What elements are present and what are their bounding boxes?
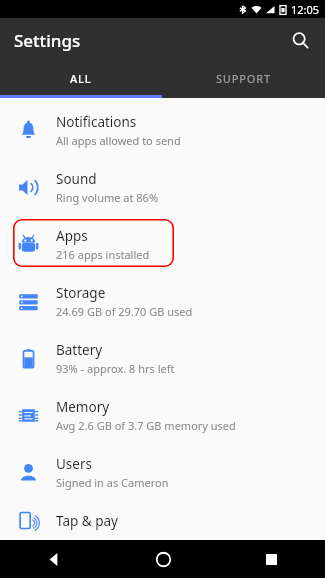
staticText: Signed in as Cameron <box>56 475 169 490</box>
button[interactable]: Recent apps <box>217 540 325 578</box>
button[interactable]: Memory <box>0 387 325 444</box>
staticText: Avg 2.6 GB of 3.7 GB memory used <box>56 418 236 433</box>
button[interactable]: Battery <box>0 330 325 387</box>
staticText: ALL <box>70 71 92 86</box>
button[interactable]: Storage <box>0 273 325 330</box>
staticText: Ring volume at 86% <box>56 190 159 205</box>
button[interactable]: Sound <box>0 159 325 216</box>
button[interactable]: Back <box>0 540 109 578</box>
staticText: Memory <box>56 398 110 416</box>
staticText: SUPPORT <box>216 71 271 86</box>
button[interactable]: Apps <box>0 216 325 273</box>
button[interactable]: Search <box>283 23 317 57</box>
staticText: Settings <box>14 29 81 52</box>
staticText: All apps allowed to send <box>56 133 181 148</box>
staticText: Sound <box>56 170 97 188</box>
staticText: 216 apps installed <box>56 247 150 262</box>
button[interactable]: ALL <box>0 62 162 95</box>
button[interactable]: Notifications <box>0 102 325 159</box>
staticText: Notifications <box>56 113 137 131</box>
button[interactable]: Home <box>109 540 217 578</box>
staticText: 93% - approx. 8 hrs left <box>56 361 175 376</box>
staticText: 24.69 GB of 29.70 GB used <box>56 304 193 319</box>
button[interactable]: Users <box>0 444 325 501</box>
staticText: Battery <box>56 341 103 359</box>
staticText: Storage <box>56 284 106 302</box>
staticText: Apps <box>56 227 88 245</box>
staticText: Users <box>56 455 92 473</box>
staticText: 12:05 <box>291 2 320 17</box>
button[interactable]: Tap & pay <box>0 501 325 540</box>
button[interactable]: SUPPORT <box>162 62 325 95</box>
staticText: Tap & pay <box>56 512 118 530</box>
